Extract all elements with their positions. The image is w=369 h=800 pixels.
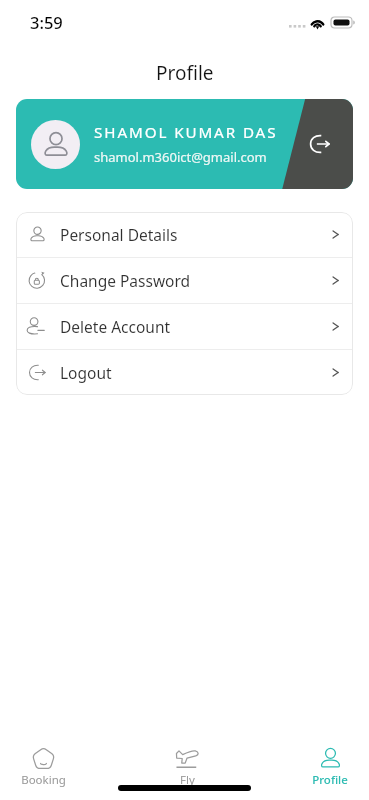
button[interactable]: Personal Details — [16, 212, 353, 257]
button[interactable]: SHAMOL KUMAR DAS — [16, 99, 353, 189]
button[interactable]: Change Password — [16, 258, 353, 303]
staticText: Profile — [156, 60, 214, 84]
button[interactable]: Profile — [306, 747, 354, 788]
button[interactable]: Booking — [19, 747, 67, 788]
staticText: Personal Details — [60, 224, 178, 245]
button[interactable]: Fly — [163, 747, 211, 788]
staticText: Booking — [21, 772, 66, 788]
staticText: Fly — [180, 772, 195, 788]
staticText: 3:59 — [30, 11, 63, 33]
button[interactable]: Logout — [16, 350, 353, 395]
button[interactable]: Delete Account — [16, 304, 353, 349]
staticText: Change Password — [60, 270, 191, 291]
staticText: Profile — [312, 772, 348, 788]
staticText: Delete Account — [60, 316, 171, 337]
staticText: shamol.m360ict@gmail.com — [94, 148, 267, 166]
button[interactable]: Logout — [303, 127, 337, 161]
staticText: SHAMOL KUMAR DAS — [94, 122, 278, 143]
staticText: Logout — [60, 362, 112, 383]
